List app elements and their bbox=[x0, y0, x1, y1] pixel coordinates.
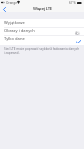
button[interactable]: Back bbox=[0, 6, 9, 13]
button[interactable]: Obrazy i danych bbox=[0, 27, 84, 35]
button[interactable]: Wyjątkowe bbox=[0, 19, 84, 27]
staticText: 67 % bbox=[69, 1, 76, 5]
staticText: Więcej LTE bbox=[33, 6, 52, 12]
staticText: Tylko dane bbox=[4, 36, 25, 42]
staticText: Sieć LTE może poprawić szybkość ładowani… bbox=[4, 47, 80, 55]
staticText: Wyjątkowe bbox=[4, 20, 25, 26]
button[interactable]: Tylko dane bbox=[0, 35, 84, 43]
staticText: Orange bbox=[6, 1, 17, 5]
staticText: Obrazy i danych bbox=[4, 28, 35, 34]
